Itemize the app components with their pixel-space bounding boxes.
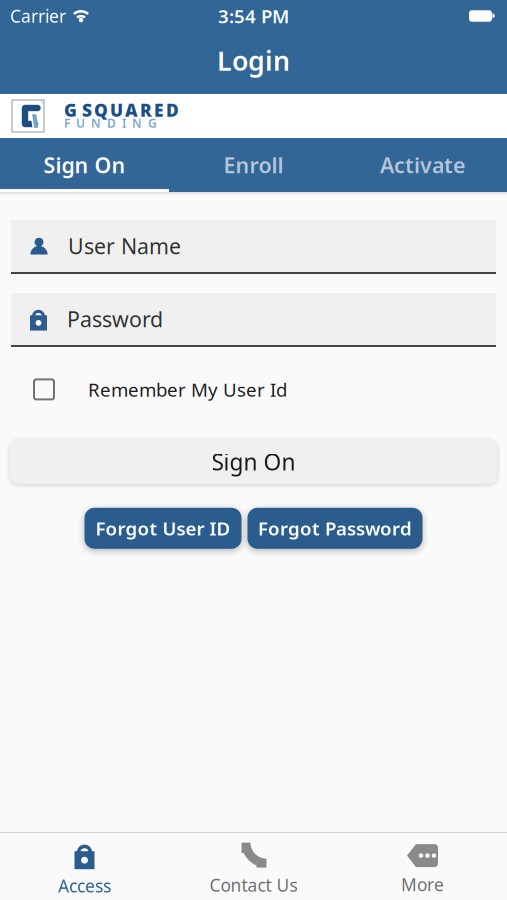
staticText: Carrier bbox=[10, 4, 66, 27]
staticText: Access bbox=[58, 874, 111, 897]
textField[interactable]: User Name bbox=[68, 232, 496, 260]
staticText: Forgot Password bbox=[258, 516, 412, 541]
button[interactable]: Remember My User Id bbox=[33, 377, 287, 402]
button[interactable]: Access bbox=[0, 842, 169, 897]
button[interactable]: Sign On bbox=[0, 138, 169, 192]
staticText: Contact Us bbox=[209, 874, 297, 897]
staticText: Sign On bbox=[43, 151, 125, 179]
button[interactable]: Enroll bbox=[169, 138, 338, 192]
button[interactable]: Activate bbox=[338, 138, 507, 192]
staticText: Forgot User ID bbox=[95, 516, 230, 541]
staticText: Enroll bbox=[223, 151, 283, 179]
staticText: 3:54 PM bbox=[218, 4, 289, 28]
staticText: Activate bbox=[380, 151, 465, 179]
button[interactable]: Forgot User ID bbox=[84, 508, 241, 549]
button[interactable]: Sign On bbox=[10, 440, 497, 484]
button[interactable]: Forgot Password bbox=[247, 508, 422, 549]
button[interactable]: Contact Us bbox=[169, 843, 338, 897]
staticText: F U N D I N G bbox=[64, 115, 157, 131]
button[interactable]: More bbox=[338, 843, 507, 896]
staticText: User Name bbox=[68, 232, 181, 260]
staticText: Remember My User Id bbox=[88, 377, 287, 402]
staticText: More bbox=[401, 873, 444, 896]
staticText: G S Q U A R E D bbox=[64, 98, 179, 121]
staticText: Sign On bbox=[211, 447, 295, 477]
staticText: Login bbox=[217, 43, 290, 78]
textField[interactable]: Password bbox=[67, 305, 496, 333]
staticText: Password bbox=[67, 305, 163, 333]
